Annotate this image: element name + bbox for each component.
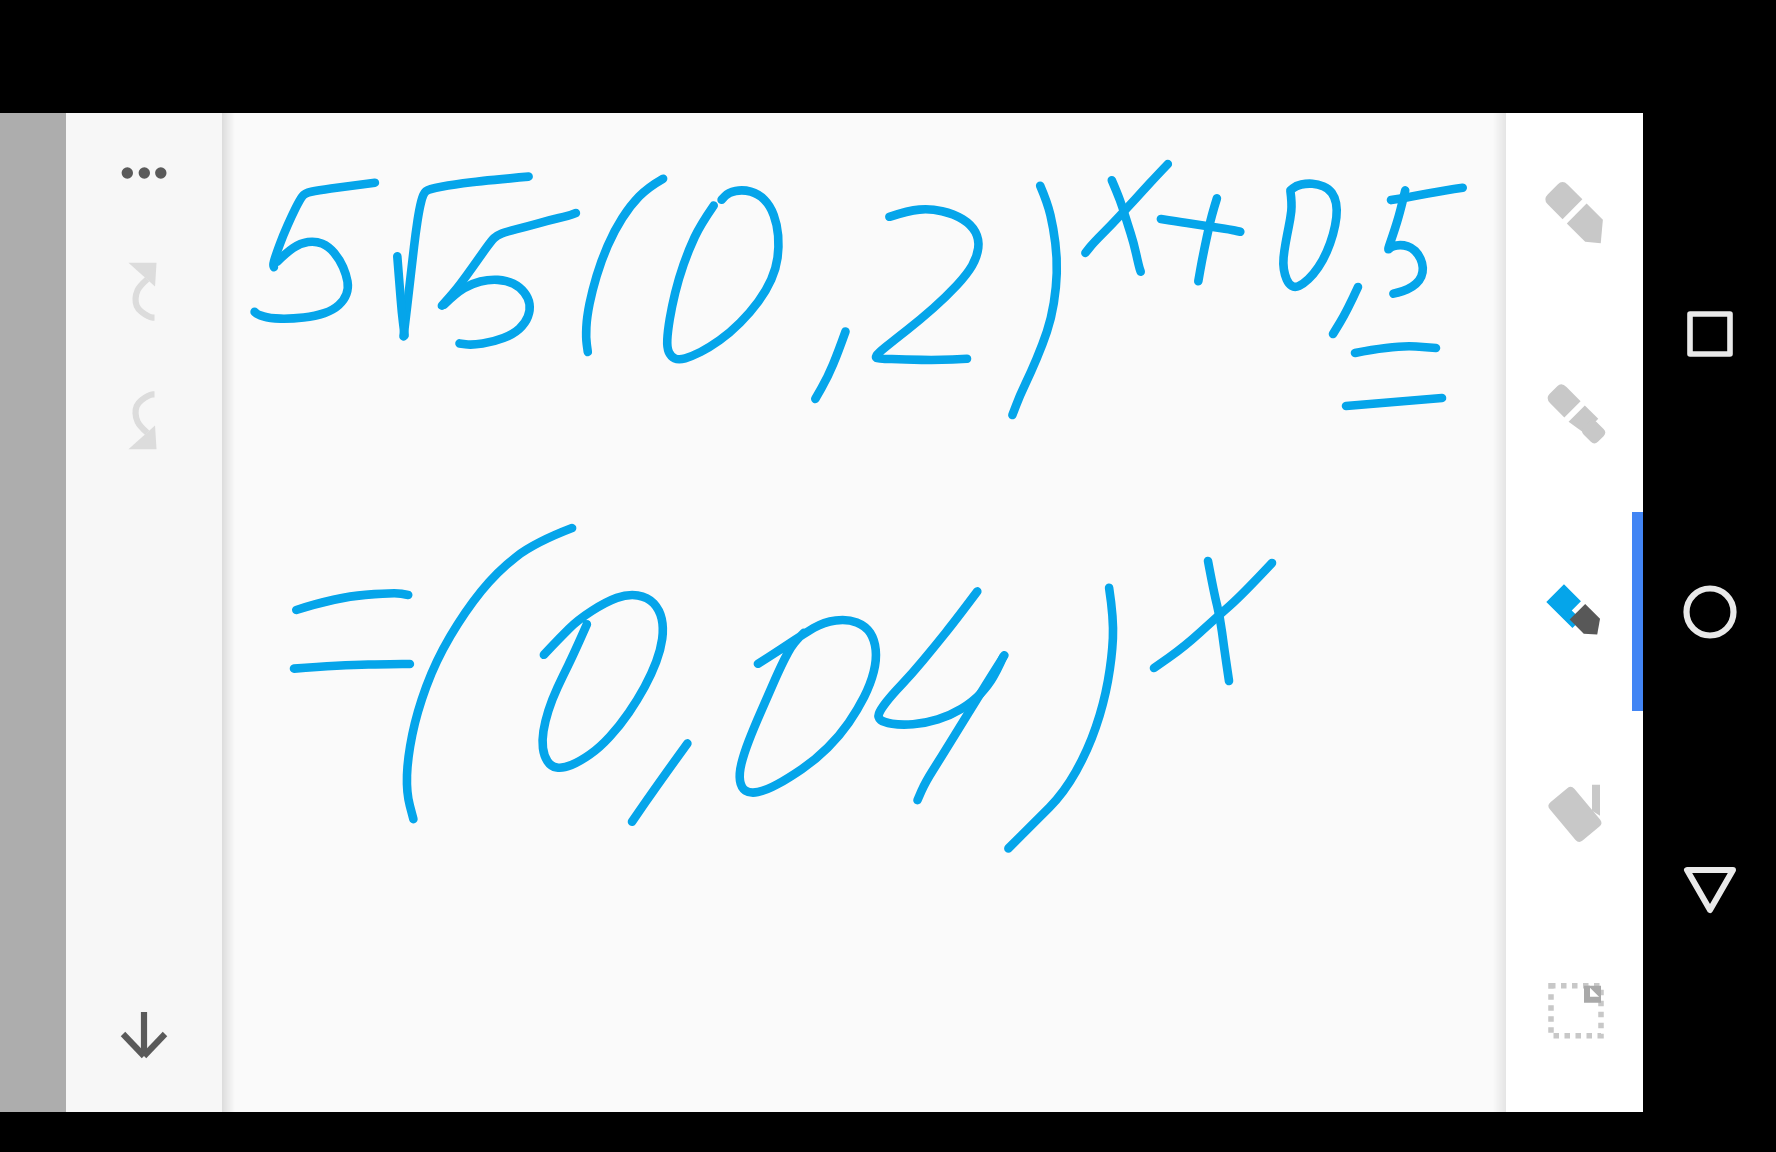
button[interactable]: Collapse toolbar (78, 990, 210, 1078)
button[interactable]: Back (1665, 845, 1755, 935)
button[interactable]: More options (78, 129, 210, 217)
button[interactable]: Pen (1506, 313, 1643, 513)
button[interactable]: Eraser (1506, 712, 1643, 912)
button[interactable]: Home (1665, 567, 1755, 657)
button[interactable]: Marker (1506, 113, 1643, 313)
button[interactable]: Recent apps (1665, 289, 1755, 379)
button[interactable]: Redo (78, 246, 210, 334)
button[interactable]: Highlighter (1506, 512, 1643, 712)
button[interactable]: Lasso select (1506, 911, 1643, 1111)
button[interactable]: Undo (78, 378, 210, 466)
